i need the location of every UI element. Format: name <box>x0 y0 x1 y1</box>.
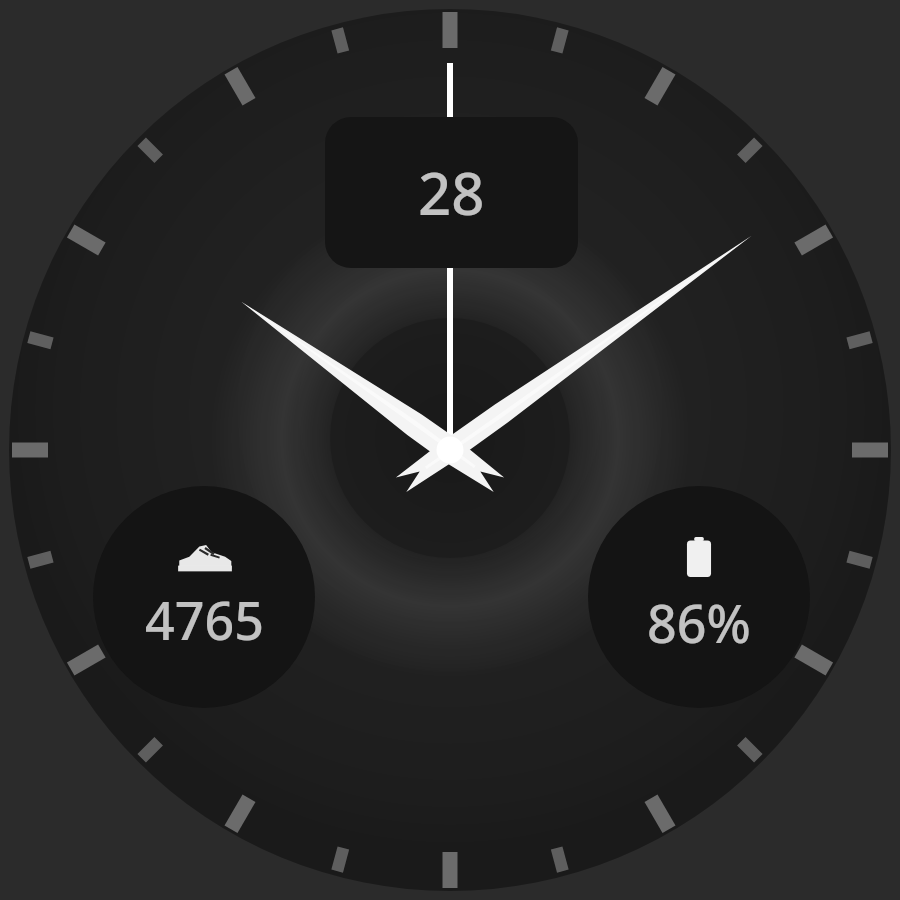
staticText: 4765 <box>145 584 264 655</box>
staticText: 28 <box>418 153 485 232</box>
staticText: 86% <box>647 587 751 658</box>
button[interactable]: Steps 4765 <box>93 486 315 708</box>
button[interactable]: Battery 86 percent <box>588 486 810 708</box>
button[interactable]: Date 28 <box>325 117 578 268</box>
